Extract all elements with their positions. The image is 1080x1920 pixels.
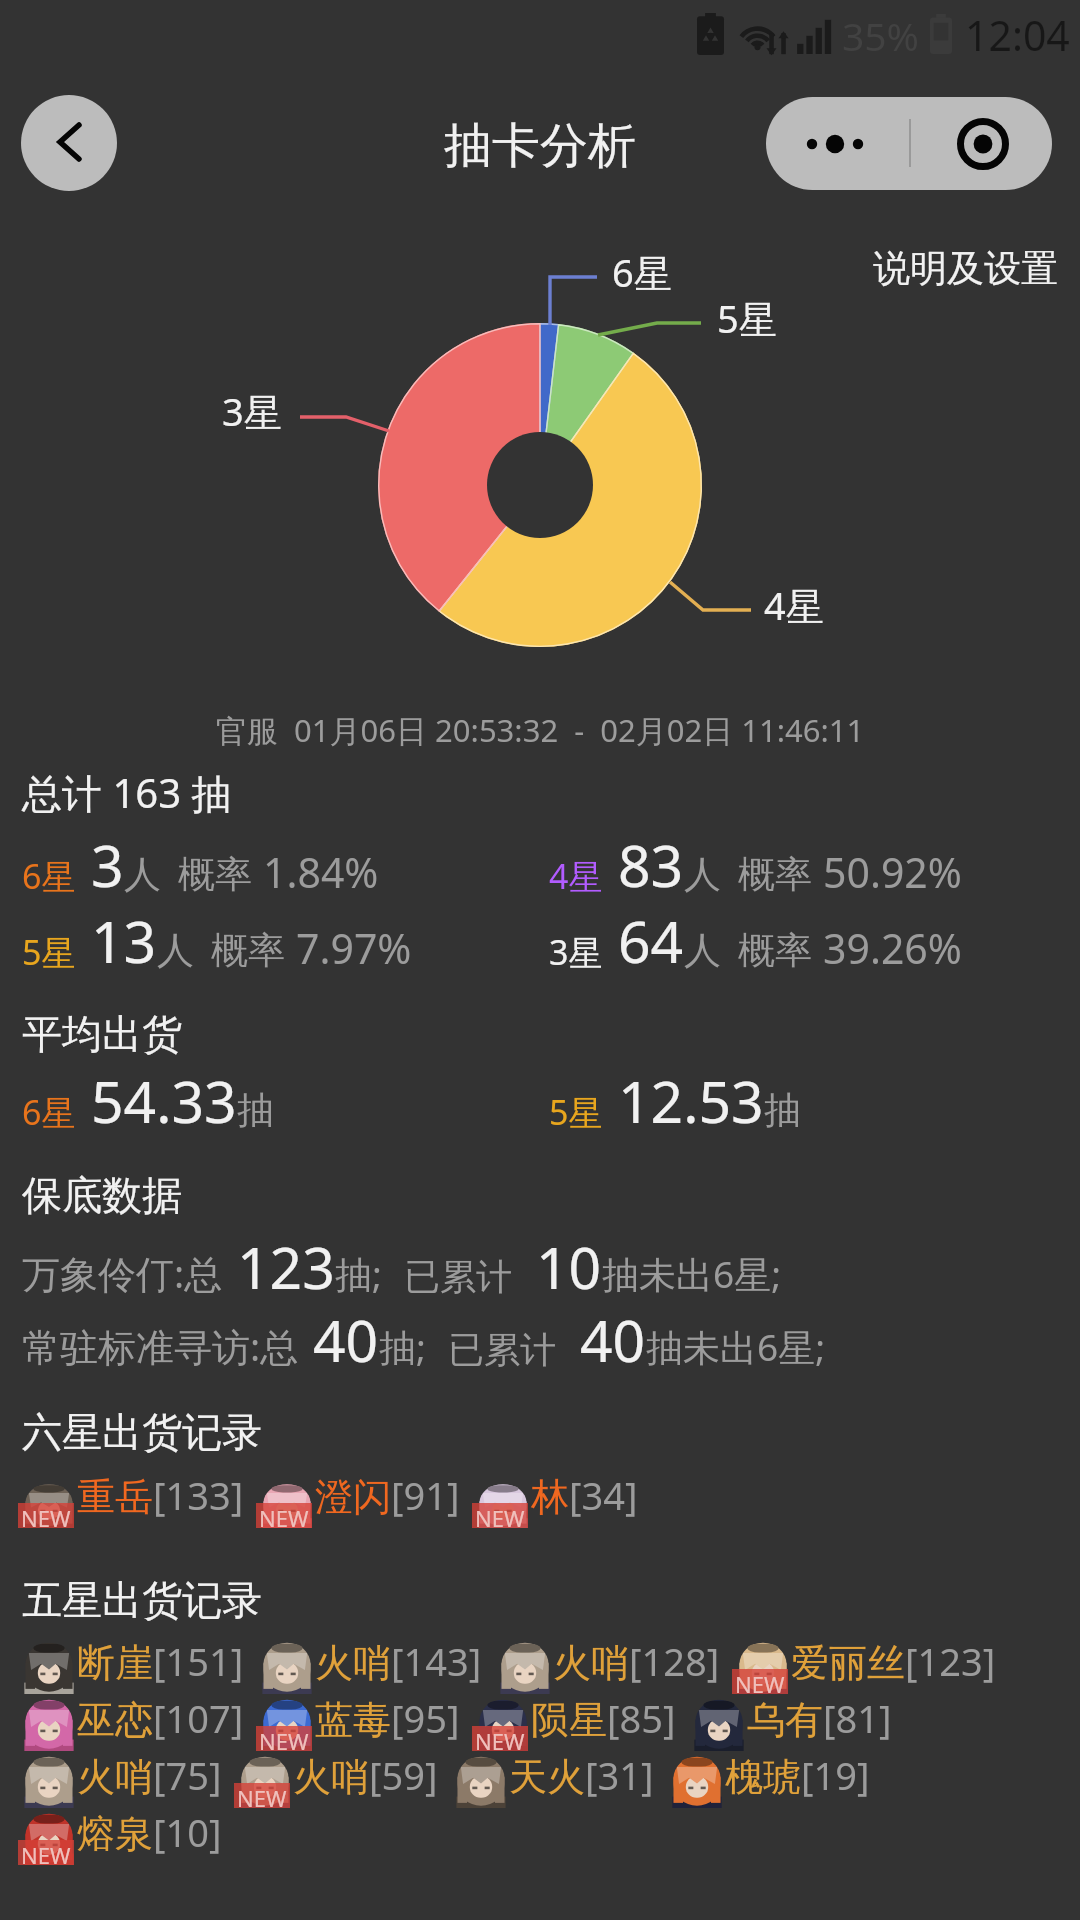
button[interactable]: NEW <box>21 1808 237 1865</box>
staticText: 50.92% <box>823 844 962 900</box>
staticText: NEW <box>237 1783 287 1808</box>
button[interactable]: NEW <box>475 1470 653 1528</box>
staticText: 13 <box>91 902 157 980</box>
staticText: [10] <box>153 1806 222 1858</box>
staticText: 熔泉 <box>77 1810 153 1858</box>
staticText: 5星 <box>549 1089 603 1135</box>
staticText: [91] <box>391 1469 460 1521</box>
button[interactable]: NEW <box>21 1470 259 1528</box>
staticText: 平均出货 <box>22 1009 182 1059</box>
staticText: 3星 <box>549 929 603 975</box>
staticText: 林 <box>531 1473 569 1521</box>
staticText: 概率 <box>178 851 252 898</box>
staticText: 人 <box>124 851 161 898</box>
staticText: 五星出货记录 <box>22 1575 262 1625</box>
staticText: 蓝毒 <box>315 1696 391 1744</box>
staticText: 抽 <box>764 1087 801 1134</box>
staticText: 抽 <box>237 1087 274 1134</box>
staticText: 抽; <box>379 1321 426 1372</box>
staticText: 澄闪 <box>315 1473 391 1521</box>
button[interactable]: 乌有 <box>691 1694 907 1751</box>
staticText: 已累计 <box>404 1254 512 1299</box>
button[interactable]: 火哨 <box>259 1637 497 1694</box>
button[interactable]: NEW <box>259 1470 475 1528</box>
staticText: 陨星 <box>531 1696 607 1744</box>
staticText: 已累计 <box>448 1327 556 1372</box>
staticText: 抽未出6星; <box>646 1321 826 1372</box>
staticText: 爱丽丝 <box>791 1639 905 1687</box>
staticText: [123] <box>905 1635 996 1687</box>
staticText: [128] <box>629 1635 720 1687</box>
staticText: 概率 <box>738 927 812 974</box>
staticText: [151] <box>153 1635 244 1687</box>
staticText: [107] <box>153 1692 244 1744</box>
button[interactable]: NEW <box>237 1751 453 1808</box>
staticText: 官服 01月06日 20:53:32 - 02月02日 11:46:11 <box>216 709 865 751</box>
staticText: [59] <box>369 1749 438 1801</box>
staticText: 6星 <box>612 246 672 298</box>
staticText: 人 <box>157 927 194 974</box>
staticText: 39.26% <box>823 920 962 976</box>
staticText: 抽未出6星; <box>602 1248 782 1299</box>
staticText: 6星 <box>22 1089 76 1135</box>
staticText: 4星 <box>764 579 824 631</box>
staticText: 槐琥 <box>725 1753 801 1801</box>
staticText: 1.84% <box>263 844 379 900</box>
button[interactable]: 槐琥 <box>669 1751 885 1808</box>
staticText: 4星 <box>549 853 603 899</box>
staticText: [19] <box>801 1749 870 1801</box>
button[interactable]: 火哨 <box>497 1637 735 1694</box>
staticText: 40 <box>313 1301 379 1379</box>
staticText: NEW <box>259 1503 309 1528</box>
staticText: 54.33 <box>91 1062 237 1140</box>
staticText: 123 <box>237 1228 335 1306</box>
staticText: 抽; <box>335 1248 382 1299</box>
staticText: 64 <box>618 902 684 980</box>
staticText: 3 <box>91 826 124 904</box>
staticText: 保底数据 <box>22 1170 182 1220</box>
staticText: 火哨 <box>77 1753 153 1801</box>
staticText: 天火 <box>509 1753 585 1801</box>
button[interactable]: 火哨 <box>21 1751 237 1808</box>
button[interactable]: NEW <box>475 1694 691 1751</box>
staticText: 常驻标准寻访:总 <box>22 1320 299 1372</box>
button[interactable]: 巫恋 <box>21 1694 259 1751</box>
staticText: 火哨 <box>553 1639 629 1687</box>
button[interactable]: 断崖 <box>21 1637 259 1694</box>
button[interactable]: NEW <box>259 1694 475 1751</box>
staticText: NEW <box>475 1726 525 1751</box>
staticText: 火哨 <box>315 1639 391 1687</box>
button[interactable]: 天火 <box>453 1751 669 1808</box>
staticText: 5星 <box>717 292 777 344</box>
staticText: NEW <box>21 1503 71 1528</box>
staticText: [133] <box>153 1469 244 1521</box>
staticText: [31] <box>585 1749 654 1801</box>
staticText: NEW <box>21 1840 71 1865</box>
staticText: 人 <box>684 927 721 974</box>
staticText: NEW <box>735 1669 785 1694</box>
staticText: 6星 <box>22 853 76 899</box>
staticText: NEW <box>259 1726 309 1751</box>
button[interactable]: Back <box>21 95 117 191</box>
staticText: [34] <box>569 1469 638 1521</box>
staticText: 10 <box>536 1228 602 1306</box>
staticText: [143] <box>391 1635 482 1687</box>
staticText: 人 <box>684 851 721 898</box>
staticText: [85] <box>607 1692 676 1744</box>
button[interactable]: 说明及设置 <box>873 245 1058 292</box>
staticText: 火哨 <box>293 1753 369 1801</box>
staticText: 六星出货记录 <box>22 1407 262 1457</box>
button[interactable]: NEW <box>735 1637 1011 1694</box>
button[interactable]: More options <box>766 97 909 190</box>
staticText: 5星 <box>22 929 76 975</box>
staticText: 抽卡分析 <box>444 116 636 176</box>
staticText: [75] <box>153 1749 222 1801</box>
staticText: 断崖 <box>77 1639 153 1687</box>
button[interactable]: Close mini program <box>909 97 1052 190</box>
staticText: [81] <box>823 1692 892 1744</box>
staticText: 83 <box>618 826 684 904</box>
staticText: NEW <box>475 1503 525 1528</box>
staticText: 巫恋 <box>77 1696 153 1744</box>
staticText: 12:04 <box>965 7 1070 63</box>
staticText: 35% <box>842 9 920 62</box>
